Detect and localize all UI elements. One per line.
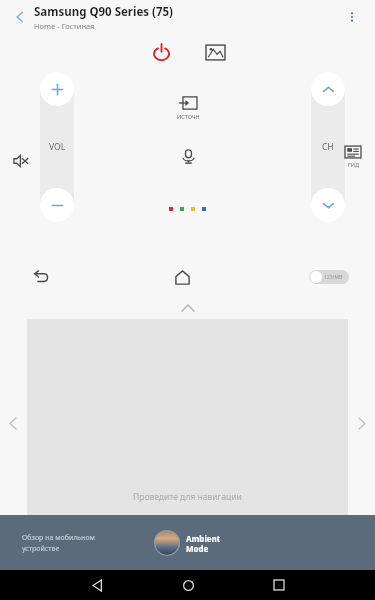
button[interactable]: ИСТОЧН [165,94,211,120]
button[interactable]: Home [174,571,202,599]
button[interactable]: 123/МВ [309,270,349,284]
button[interactable]: More options [339,4,365,30]
staticText: Проведите для навигации [133,491,242,503]
button[interactable]: ГИД [337,144,369,168]
staticText: ИСТОЧН [177,113,200,120]
button[interactable]: Voice search [174,142,202,170]
button[interactable]: Обзор на мобильном устройстве [22,533,95,553]
staticText: ГИД [348,161,359,168]
button[interactable]: Volume down [40,188,74,222]
staticText: Home - Гостиная [34,21,95,31]
button[interactable]: Channel up [311,72,345,106]
staticText: Ambient Mode [186,533,221,554]
button[interactable]: Picture mode [199,36,231,68]
staticText: Samsung Q90 Series (75) [34,4,174,20]
staticText: VOL [49,141,66,153]
button[interactable]: Back [83,571,111,599]
button[interactable]: Right [353,414,371,432]
button[interactable]: Channel down [311,188,345,222]
button[interactable]: Power [145,36,177,68]
staticText: 123/МВ [324,274,343,281]
button[interactable]: Mute [6,146,36,176]
button[interactable]: Collapse [168,300,208,316]
button[interactable]: Volume up [40,72,74,106]
button[interactable]: Recents [265,571,293,599]
staticText: CH [322,141,334,153]
button[interactable]: Back [6,3,34,31]
button[interactable]: Left [4,414,22,432]
button[interactable]: Home [167,262,197,292]
button[interactable]: Back [26,262,56,292]
button[interactable]: Ambient Mode [154,530,221,556]
